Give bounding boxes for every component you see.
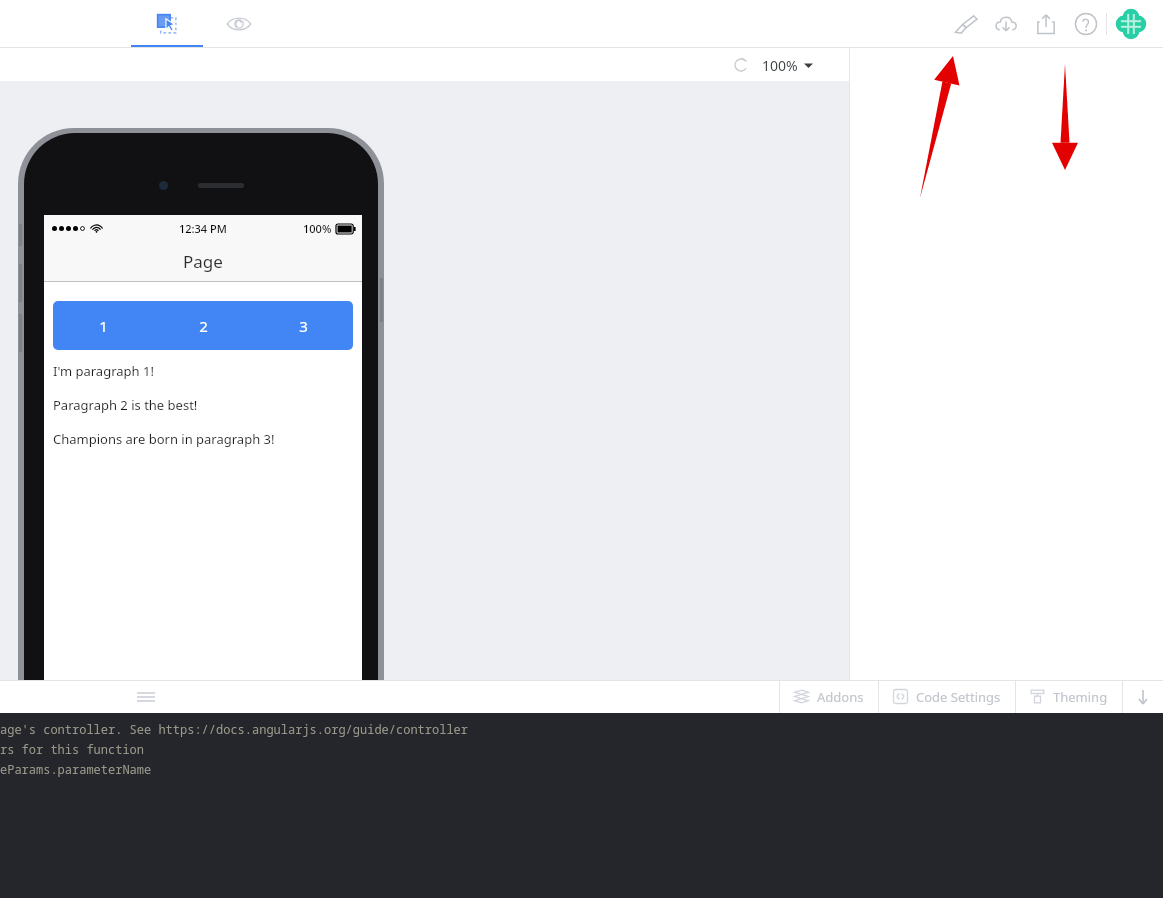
button[interactable]: 3 — [253, 301, 353, 350]
staticText: age's controller. See https://docs.angul… — [0, 721, 469, 737]
button[interactable]: Code Settings — [879, 680, 1015, 713]
staticText: rs for this function — [0, 741, 145, 757]
button[interactable]: Help — [1066, 4, 1106, 44]
button[interactable]: Collapse — [1123, 680, 1163, 713]
button[interactable]: Design — [131, 0, 203, 48]
staticText: 100% — [303, 221, 332, 236]
staticText: 12:34 PM — [179, 221, 227, 236]
staticText: Code Settings — [916, 688, 1001, 706]
staticText: Addons — [817, 688, 864, 706]
staticText: Paragraph 2 is the best! — [53, 396, 198, 414]
button[interactable]: 100% — [762, 56, 813, 75]
staticText: Theming — [1053, 688, 1108, 706]
button[interactable]: Reset zoom — [728, 52, 754, 78]
staticText: 3 — [299, 316, 308, 336]
button[interactable]: 1 — [53, 301, 153, 350]
staticText: 2 — [199, 316, 208, 336]
button[interactable]: Download — [986, 4, 1026, 44]
staticText: Page — [183, 250, 223, 273]
button[interactable]: Share — [1026, 4, 1066, 44]
staticText: I'm paragraph 1! — [53, 362, 154, 380]
staticText: 100% — [762, 56, 798, 75]
button[interactable]: Logo — [1107, 0, 1155, 48]
staticText: Champions are born in paragraph 3! — [53, 430, 275, 448]
staticText: eParams.parameterName — [0, 761, 152, 777]
button[interactable]: Theming — [1016, 680, 1122, 713]
button[interactable]: Preview — [203, 0, 275, 48]
staticText: 1 — [99, 316, 108, 336]
button[interactable]: Clean — [946, 4, 986, 44]
button[interactable]: Addons — [780, 680, 878, 713]
button[interactable]: 2 — [153, 301, 253, 350]
